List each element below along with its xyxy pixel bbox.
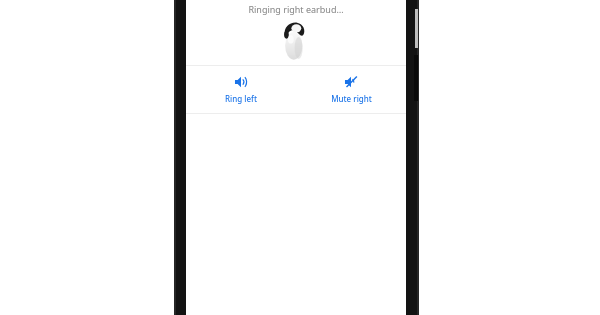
button[interactable]: Mute right <box>296 66 406 113</box>
other: Ring left <box>234 75 248 89</box>
staticText: Mute right <box>331 93 372 104</box>
other: Mute right <box>344 75 358 89</box>
staticText: Ringing right earbud… <box>248 3 344 15</box>
staticText: Ring left <box>225 93 257 104</box>
button[interactable]: Ring left <box>186 66 296 113</box>
